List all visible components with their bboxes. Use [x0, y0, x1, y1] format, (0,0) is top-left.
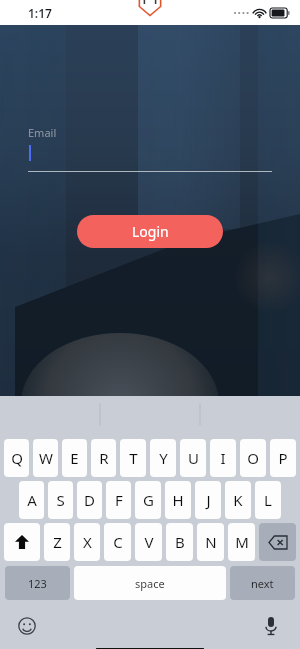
button[interactable]: E [62, 439, 87, 477]
button[interactable]: R [91, 439, 116, 477]
button[interactable]: G [135, 481, 161, 519]
staticText: A [27, 490, 37, 510]
staticText: next [251, 576, 274, 591]
button[interactable]: Login [77, 215, 223, 248]
button[interactable]: Dictation [260, 615, 282, 637]
button[interactable]: Q [4, 439, 29, 477]
button[interactable]: 123 [5, 566, 70, 600]
button[interactable]: O [240, 439, 266, 477]
staticText: W [39, 448, 53, 468]
button[interactable]: S [48, 481, 73, 519]
button[interactable]: H [165, 481, 191, 519]
staticText: G [143, 490, 154, 510]
button[interactable]: Y [150, 439, 176, 477]
button[interactable]: W [33, 439, 58, 477]
button[interactable]: K [225, 481, 251, 519]
button[interactable]: F [106, 481, 131, 519]
staticText: space [135, 576, 165, 591]
staticText: I [220, 448, 226, 468]
staticText: J [206, 490, 211, 510]
button[interactable]: C [104, 523, 131, 561]
staticText: F [115, 490, 123, 510]
button[interactable]: D [77, 481, 102, 519]
button[interactable]: N [197, 523, 224, 561]
staticText: D [84, 490, 95, 510]
staticText: N [205, 532, 217, 552]
staticText: L [264, 490, 272, 510]
button[interactable]: L [255, 481, 281, 519]
staticText: Login [132, 222, 169, 241]
button[interactable]: U [180, 439, 206, 477]
button[interactable]: P [270, 439, 296, 477]
button[interactable]: V [135, 523, 162, 561]
button[interactable]: space [74, 566, 226, 600]
staticText: B [175, 532, 185, 552]
staticText: U [188, 448, 199, 468]
button[interactable]: X [74, 523, 100, 561]
button[interactable]: Backspace [259, 523, 296, 561]
staticText: X [83, 532, 92, 552]
button[interactable]: Z [44, 523, 70, 561]
staticText: K [233, 490, 243, 510]
button[interactable]: Emoji [16, 615, 38, 637]
staticText: E [70, 448, 79, 468]
button[interactable]: Email [28, 125, 272, 172]
button[interactable]: T [120, 439, 146, 477]
staticText: T [129, 448, 138, 468]
button[interactable]: A [19, 481, 44, 519]
staticText: 123 [28, 576, 47, 591]
button[interactable]: I [210, 439, 236, 477]
staticText: S [56, 490, 65, 510]
staticText: 1:17 [28, 5, 52, 21]
staticText: Q [11, 448, 23, 468]
staticText: R [99, 448, 109, 468]
staticText: C [113, 532, 123, 552]
button[interactable]: M [228, 523, 255, 561]
staticText: M [235, 532, 249, 552]
button[interactable]: Shift [4, 523, 40, 561]
button[interactable]: next [230, 566, 295, 600]
staticText: Z [53, 532, 62, 552]
staticText: Y [159, 448, 168, 468]
staticText: V [144, 532, 154, 552]
staticText: P [278, 448, 288, 468]
staticText: H [172, 490, 184, 510]
button[interactable]: J [195, 481, 221, 519]
staticText: Email [28, 125, 57, 140]
staticText: O [247, 448, 259, 468]
button[interactable]: B [166, 523, 193, 561]
